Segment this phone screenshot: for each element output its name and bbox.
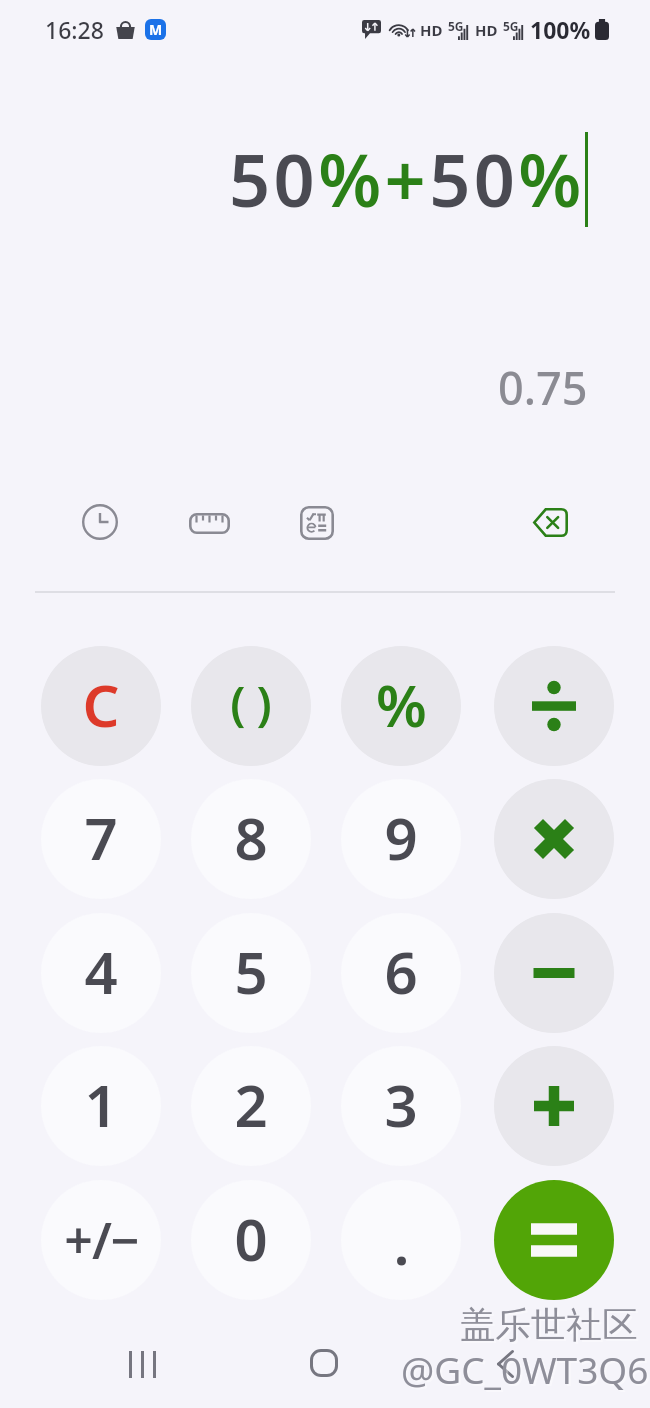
button[interactable]: Back [481, 1340, 529, 1388]
button[interactable]: C [41, 646, 161, 766]
button[interactable]: 8 [191, 779, 311, 899]
button[interactable]: Equals [494, 1180, 614, 1300]
staticText: HD [475, 20, 498, 40]
staticText: 3 [384, 1065, 418, 1144]
staticText: 盖乐世社区 [460, 1303, 638, 1348]
button[interactable]: 3 [341, 1046, 461, 1166]
button[interactable]: Scientific calculator [281, 487, 353, 559]
staticText: 盖乐世社区 [462, 1305, 640, 1350]
staticText: 0.75 [498, 357, 588, 417]
staticText: 16:28 [45, 14, 104, 45]
button[interactable]: () [191, 646, 311, 766]
staticText: 0 [234, 1199, 268, 1278]
staticText: C [82, 665, 120, 744]
staticText: M [149, 20, 163, 39]
button[interactable]: % [341, 646, 461, 766]
button[interactable]: Plus [494, 1046, 614, 1166]
staticText: @GC_0WT3Q6N [401, 1344, 650, 1394]
staticText: () [230, 671, 283, 735]
button[interactable]: 4 [41, 913, 161, 1033]
button[interactable]: Home [300, 1339, 348, 1387]
staticText: 5G [448, 18, 464, 34]
button[interactable]: 7 [41, 779, 161, 899]
staticText: 100% [530, 14, 591, 45]
staticText: 6 [384, 932, 418, 1011]
staticText: 7 [84, 798, 118, 877]
staticText: HD [420, 20, 443, 40]
button[interactable]: Minus [494, 913, 614, 1033]
button[interactable]: 2 [191, 1046, 311, 1166]
button[interactable]: 5 [191, 913, 311, 1033]
staticText: 5G [503, 18, 519, 34]
button[interactable]: Multiply [494, 779, 614, 899]
button[interactable]: . [341, 1180, 461, 1300]
button[interactable]: 1 [41, 1046, 161, 1166]
button[interactable]: 9 [341, 779, 461, 899]
button[interactable]: Recents [118, 1340, 166, 1388]
button[interactable]: +/− [41, 1180, 161, 1300]
staticText: 1 [84, 1065, 118, 1144]
button[interactable]: Divide [494, 646, 614, 766]
staticText: 50%+50% [229, 130, 585, 228]
button[interactable]: History [64, 486, 136, 558]
button[interactable]: 0 [191, 1180, 311, 1300]
staticText: 4 [84, 932, 118, 1011]
staticText: 2 [234, 1065, 268, 1144]
button[interactable]: Backspace [514, 486, 586, 558]
staticText: 9 [384, 798, 418, 877]
staticText: 5 [234, 932, 268, 1011]
button[interactable]: Unit converter [173, 487, 245, 559]
button[interactable]: 6 [341, 913, 461, 1033]
staticText: @GC_0WT3Q6N [403, 1346, 650, 1396]
staticText: % [376, 665, 427, 744]
staticText: +/− [64, 1206, 139, 1274]
staticText: . [393, 1203, 410, 1282]
staticText: 8 [234, 798, 268, 877]
